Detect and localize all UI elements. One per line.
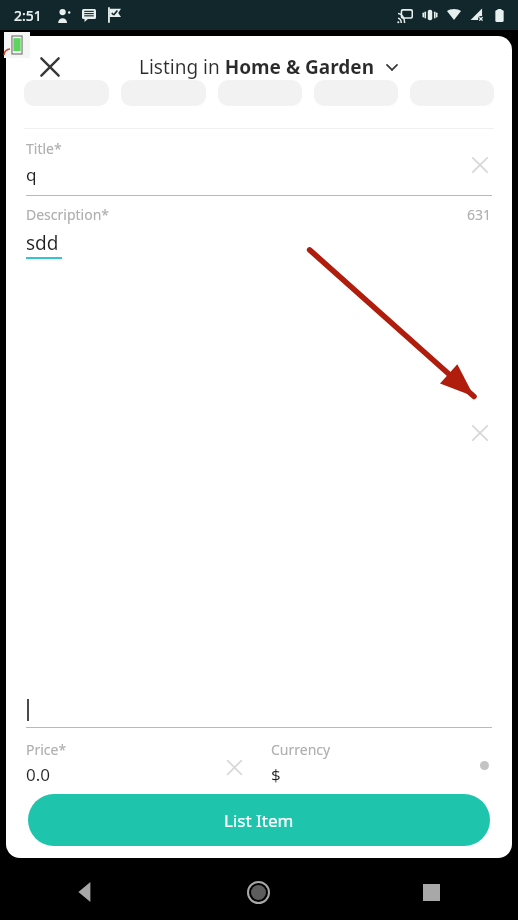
staticText: 0.0 [26, 763, 51, 786]
staticText: 631 [467, 205, 492, 224]
button[interactable]: Home [172, 864, 345, 920]
staticText: Listing in Home & Garden [139, 54, 375, 80]
button[interactable]: Select currency [470, 751, 498, 779]
staticText: 2:51 [14, 6, 42, 25]
staticText: $ [271, 763, 281, 786]
button[interactable]: List Item [28, 794, 490, 846]
button[interactable]: Recent apps [345, 864, 518, 920]
staticText: Title* [26, 139, 62, 158]
staticText: q [26, 163, 37, 186]
button[interactable]: Close [28, 45, 72, 89]
button[interactable]: Currency [259, 740, 512, 786]
button[interactable]: Clear price [217, 750, 251, 784]
button[interactable]: Back [0, 864, 172, 920]
staticText: sdd [26, 230, 59, 256]
button[interactable]: Listing in Home & Garden [135, 50, 403, 84]
staticText: Currency [271, 740, 331, 759]
staticText: List Item [224, 809, 294, 832]
button[interactable]: Description* [6, 205, 512, 728]
button[interactable]: Title* [6, 139, 512, 196]
button[interactable]: Clear title [462, 147, 498, 183]
staticText: Price* [26, 740, 67, 759]
button[interactable]: Price* [6, 740, 259, 786]
button[interactable]: Clear description [462, 415, 498, 451]
staticText: Description* [26, 205, 110, 224]
